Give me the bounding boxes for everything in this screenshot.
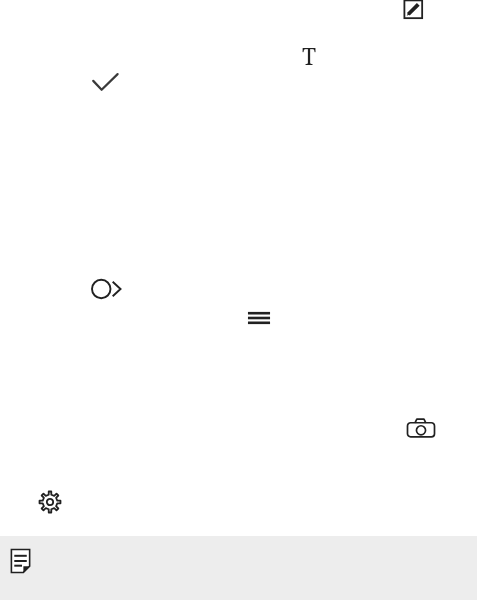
button[interactable]: Settings — [38, 490, 62, 514]
button[interactable]: Camera — [406, 416, 436, 442]
button[interactable]: Menu — [247, 308, 271, 328]
button[interactable]: Done — [91, 71, 119, 97]
other: Note — [9, 548, 33, 574]
button[interactable]: Next — [91, 278, 125, 300]
button[interactable]: Text format — [296, 40, 322, 66]
staticText: T — [302, 40, 317, 66]
button[interactable]: Edit — [402, 0, 426, 22]
button[interactable]: Note — [0, 536, 477, 600]
